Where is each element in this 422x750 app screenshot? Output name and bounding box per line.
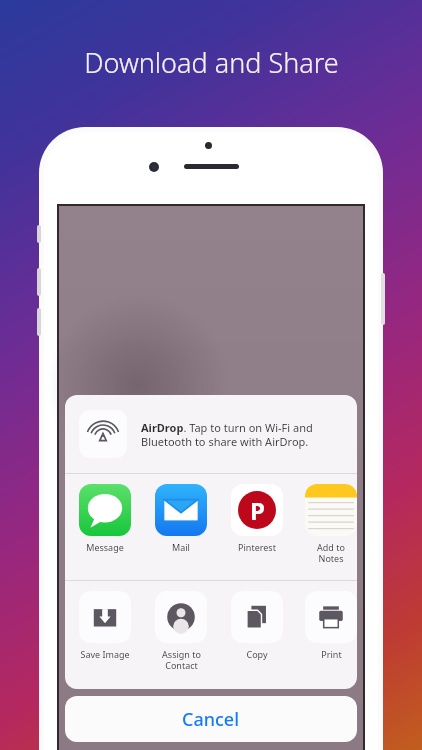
staticText: Mail xyxy=(172,541,190,553)
staticText: AirDrop. Tap to turn on Wi-Fi and Blueto… xyxy=(141,420,343,449)
button[interactable]: Cancel xyxy=(65,696,357,742)
button[interactable]: Add to Notes xyxy=(305,484,357,564)
staticText: Message xyxy=(86,541,124,553)
button[interactable]: Assign to Contact xyxy=(153,591,209,671)
staticText: Copy xyxy=(246,648,268,660)
staticText: Pinterest xyxy=(238,541,276,553)
staticText: Assign to Contact xyxy=(162,648,201,671)
button[interactable]: Message xyxy=(77,484,133,553)
button[interactable]: Print xyxy=(305,591,357,660)
button[interactable]: Copy xyxy=(229,591,285,660)
staticText: P xyxy=(250,494,265,527)
staticText: Cancel xyxy=(182,707,240,732)
button[interactable]: AirDrop. Tap to turn on Wi-Fi and Blueto… xyxy=(65,395,357,473)
staticText: Add to Notes xyxy=(305,541,357,564)
staticText: Save Image xyxy=(80,648,130,660)
button[interactable]: Save Image xyxy=(77,591,133,660)
staticText: Download and Share xyxy=(84,44,339,81)
staticText: Print xyxy=(321,648,342,660)
button[interactable]: P xyxy=(229,484,285,553)
button[interactable]: Mail xyxy=(153,484,209,553)
